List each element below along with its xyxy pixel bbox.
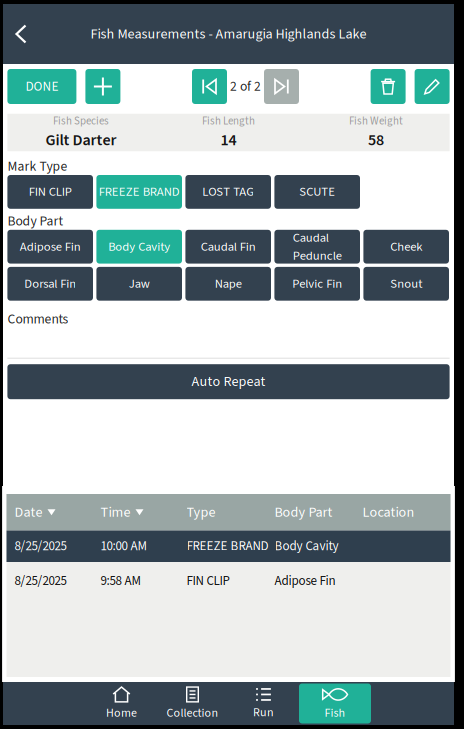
staticText: Collection [166,704,218,722]
staticText: Run [253,704,274,721]
button[interactable]: Nape [185,267,271,301]
staticText: SCUTE [299,183,335,201]
staticText: Snout [390,275,422,293]
staticText: 14 [220,129,236,152]
staticText: Date [14,502,42,522]
staticText: 10:00 AM [100,537,146,555]
button[interactable]: Back [3,4,39,64]
button[interactable]: Home [86,683,157,723]
staticText: Jaw [129,275,150,293]
staticText: 2 of 2 [230,77,261,96]
button[interactable]: LOST TAG [185,175,271,209]
button[interactable]: Dorsal Fin [7,267,93,301]
staticText: 8/25/2025 [14,572,66,590]
staticText: Fish Weight [349,113,403,129]
staticText: 58 [368,129,384,152]
button[interactable]: Previous record [192,69,227,104]
button[interactable]: Edit [415,69,450,104]
button[interactable]: Body Cavity [96,230,182,264]
staticText: Body Part [7,212,63,231]
button[interactable]: DONE [7,69,76,104]
button[interactable]: Pelvic Fin [274,267,360,301]
button[interactable]: Collection [157,683,228,723]
button[interactable]: FREEZE BRAND [96,175,182,209]
button[interactable]: Next record [264,69,299,104]
button[interactable]: Fish [299,683,371,723]
button[interactable]: Delete [371,69,406,104]
staticText: Home [106,704,137,722]
button[interactable]: SCUTE [274,175,360,209]
staticText: Dorsal Fin [24,275,76,293]
staticText: Adipose Fin [20,238,81,256]
staticText: FIN CLIP [186,572,229,590]
staticText: Nape [215,275,242,293]
staticText: FIN CLIP [29,183,72,201]
button[interactable]: Caudal Peduncle [274,230,360,264]
staticText: Fish Measurements - Amarugia Highlands L… [90,24,366,44]
button[interactable]: Caudal Fin [185,230,271,264]
staticText: FREEZE BRAND [99,183,180,201]
staticText: Fish Species [53,113,109,129]
button[interactable]: Jaw [96,267,182,301]
staticText: Mark Type [7,157,67,176]
staticText: Caudal Fin [201,238,256,256]
staticText: Comments [7,309,68,329]
button[interactable]: FIN CLIP [7,175,93,209]
staticText: Caudal Peduncle [293,229,342,265]
staticText: Time [100,502,130,522]
staticText: Pelvic Fin [292,275,342,293]
staticText: LOST TAG [202,183,254,201]
staticText: DONE [25,77,58,96]
staticText: Cheek [390,238,422,256]
staticText: Auto Repeat [191,372,265,392]
staticText: 8/25/2025 [14,537,66,555]
staticText: 9:58 AM [100,572,140,590]
staticText: FREEZE BRAND [186,537,268,555]
staticText: Gilt Darter [46,129,117,152]
staticText: Location [362,502,414,522]
staticText: Body Cavity [108,238,170,256]
staticText: Body Cavity [274,537,338,555]
staticText: Adipose Fin [274,572,335,590]
button[interactable]: Auto Repeat [7,364,450,399]
button[interactable]: Adipose Fin [7,230,93,264]
button[interactable]: Cheek [363,230,449,264]
button[interactable]: Snout [363,267,449,301]
button[interactable]: Add [85,69,120,104]
staticText: Type [186,502,215,522]
staticText: Fish Length [202,113,255,129]
button[interactable]: Run [228,683,299,723]
staticText: Fish [324,704,345,722]
staticText: Body Part [274,502,332,522]
